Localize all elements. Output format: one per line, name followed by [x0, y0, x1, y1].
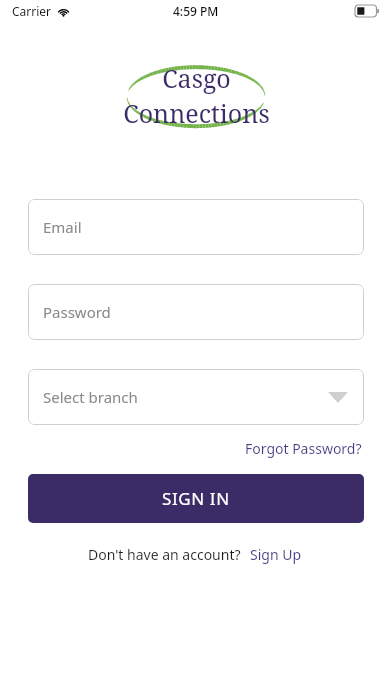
- button[interactable]: SIGN IN: [28, 474, 364, 523]
- button[interactable]: Select branch: [28, 369, 364, 425]
- staticText: SIGN IN: [162, 487, 230, 510]
- staticText: Sign Up: [250, 545, 302, 564]
- button[interactable]: Sign Up: [248, 542, 304, 567]
- staticText: Casgo: [162, 61, 231, 95]
- staticText: Email: [43, 217, 82, 237]
- staticText: Forgot Password?: [245, 439, 362, 458]
- button[interactable]: Email: [28, 199, 364, 255]
- staticText: Connections: [123, 96, 270, 130]
- button[interactable]: Forgot Password?: [243, 436, 364, 461]
- staticText: Carrier: [12, 3, 52, 19]
- staticText: Don't have an account?: [88, 545, 241, 564]
- button[interactable]: Password: [28, 284, 364, 340]
- staticText: Select branch: [43, 387, 138, 407]
- staticText: Password: [43, 302, 111, 322]
- staticText: 4:59 PM: [173, 3, 219, 19]
